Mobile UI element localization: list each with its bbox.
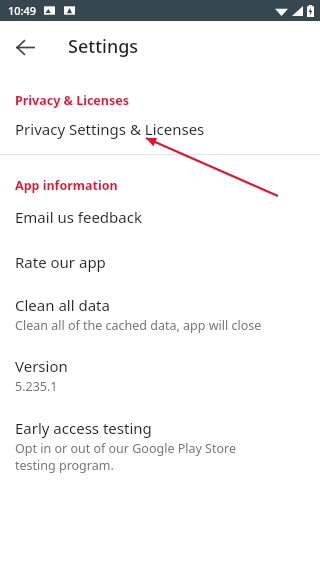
staticText: Privacy Settings & Licenses — [15, 119, 205, 139]
staticText: Privacy & Licenses — [15, 92, 129, 109]
button[interactable]: Early access testing — [0, 418, 320, 473]
staticText: Clean all data — [15, 295, 110, 315]
button[interactable]: Clean all data — [0, 295, 320, 334]
staticText: Opt in or out of our Google Play Store t… — [15, 440, 237, 473]
staticText: Email us feedback — [15, 207, 142, 227]
staticText: Clean all of the cached data, app will c… — [15, 317, 262, 334]
button[interactable]: Rate our app — [0, 252, 320, 272]
button[interactable]: Version — [0, 356, 320, 395]
staticText: App information — [15, 177, 118, 194]
staticText: Version — [15, 356, 68, 376]
staticText: Early access testing — [15, 418, 152, 438]
button[interactable]: Back — [9, 31, 41, 63]
button[interactable]: Email us feedback — [0, 207, 320, 227]
button[interactable]: Privacy Settings & Licenses — [0, 119, 320, 139]
staticText: Settings — [68, 34, 139, 59]
staticText: 5.235.1 — [15, 378, 58, 395]
staticText: Rate our app — [15, 252, 106, 272]
staticText: 10:49 — [8, 3, 37, 18]
